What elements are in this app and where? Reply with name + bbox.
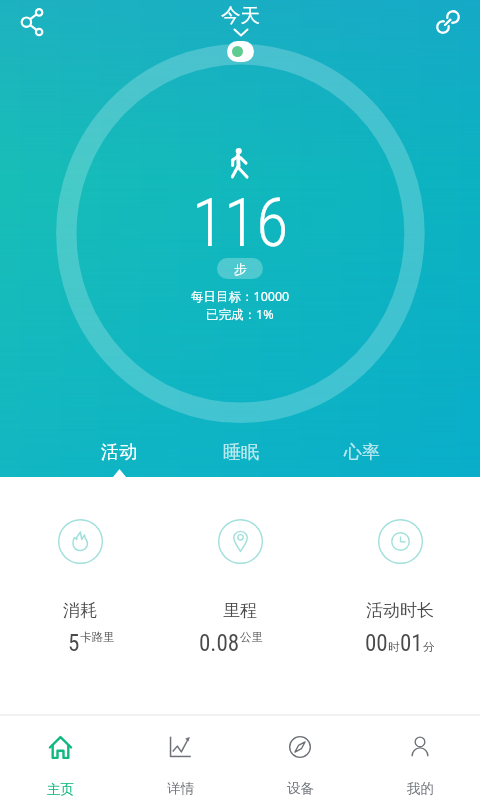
staticText: 116 [192,185,289,262]
button[interactable]: 心率 [301,437,422,477]
button[interactable]: 睡眠 [180,437,301,477]
staticText: 时 [388,640,400,654]
staticText: 5 [68,630,80,657]
staticText: 分 [423,640,435,654]
button[interactable]: Device connected [227,41,254,62]
staticText: 设备 [287,780,314,797]
staticText: 消耗 [63,600,97,621]
button[interactable]: 主页 [0,716,120,800]
staticText: 01 [400,630,423,657]
button[interactable]: 消耗 [0,519,160,657]
button[interactable]: Share [11,1,55,45]
button[interactable]: 活动 [58,437,180,477]
staticText: 心率 [344,441,380,464]
staticText: 已完成：1% [206,306,274,323]
staticText: 00 [365,630,388,657]
button[interactable]: 设备 [240,716,360,800]
staticText: 0.08 [199,630,240,657]
staticText: 卡路里 [80,630,115,644]
staticText: 里程 [223,600,257,621]
button[interactable]: 详情 [120,716,240,800]
staticText: 活动时长 [366,600,434,621]
button[interactable]: Link device [426,0,470,44]
staticText: 睡眠 [223,441,259,464]
staticText: 主页 [47,781,74,798]
staticText: 公里 [240,630,263,644]
button[interactable]: 里程 [160,519,320,657]
staticText: 活动 [101,441,137,464]
button[interactable]: 步 [217,258,263,279]
staticText: 详情 [167,780,194,797]
staticText: 今天 [221,3,260,28]
button[interactable]: 今天 [221,3,260,38]
button[interactable]: 活动时长 [320,519,480,657]
staticText: 步 [234,261,247,277]
staticText: 我的 [407,780,434,797]
staticText: 每日目标：10000 [191,288,290,305]
button[interactable]: 我的 [360,716,480,800]
